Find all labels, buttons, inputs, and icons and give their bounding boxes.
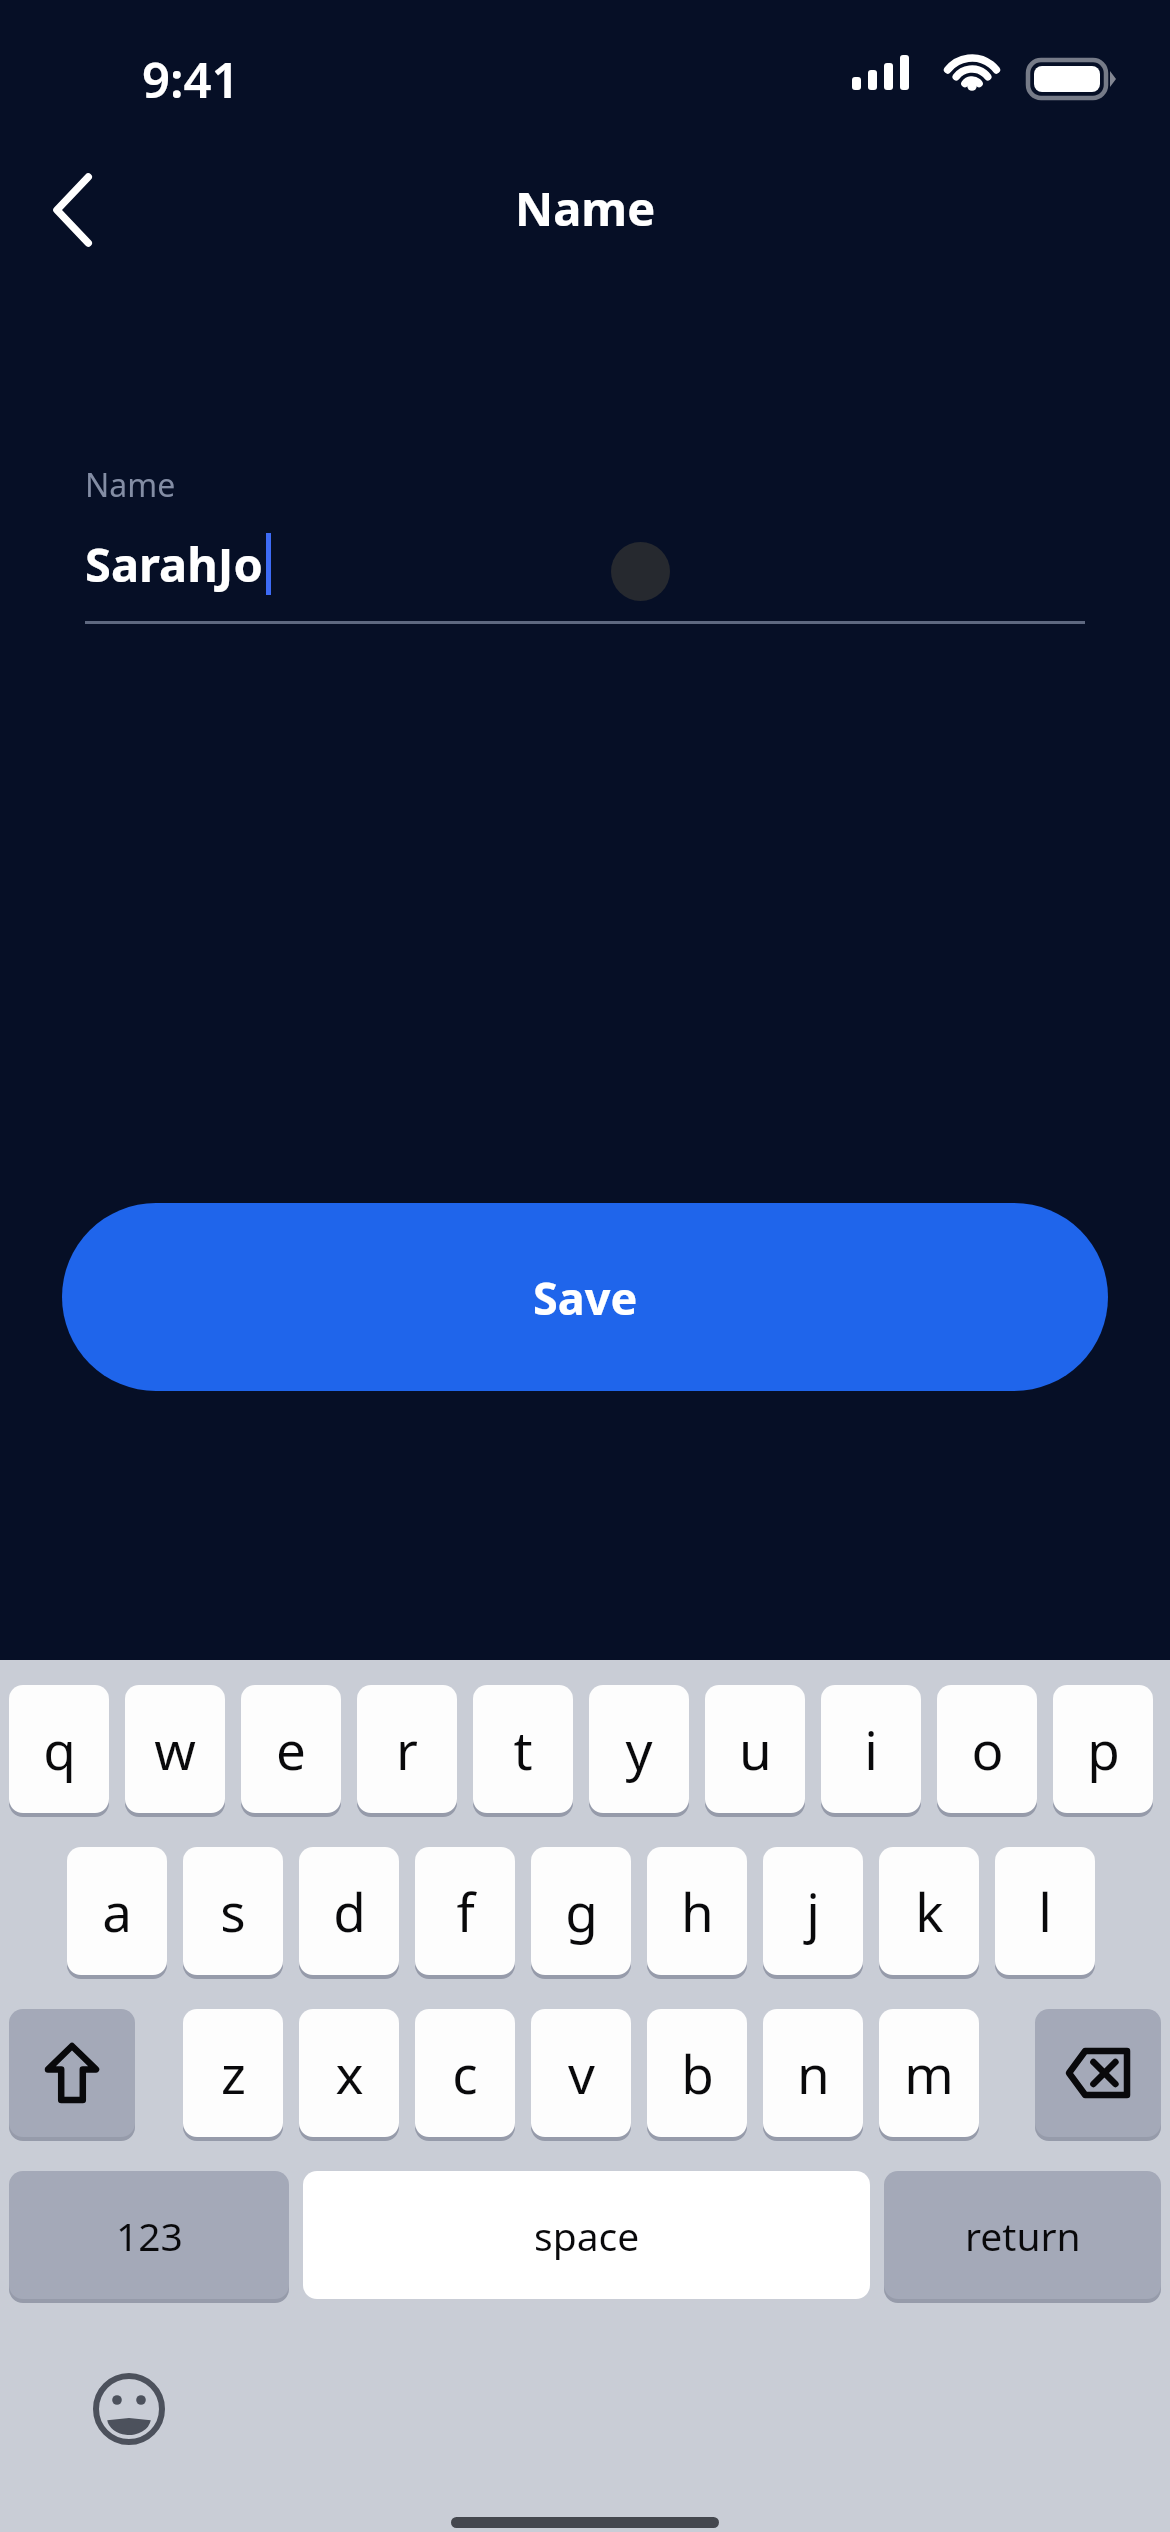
button[interactable]: j bbox=[763, 1847, 863, 1975]
button[interactable]: l bbox=[995, 1847, 1095, 1975]
button[interactable]: SarahJo bbox=[85, 522, 1085, 606]
staticText: l bbox=[1038, 1875, 1052, 1947]
staticText: v bbox=[568, 2037, 595, 2109]
staticText: g bbox=[565, 1875, 598, 1947]
staticText: 123 bbox=[116, 2209, 183, 2262]
staticText: a bbox=[102, 1875, 132, 1947]
button[interactable]: x bbox=[299, 2009, 399, 2137]
button[interactable]: Backspace bbox=[1035, 2009, 1161, 2137]
button[interactable]: d bbox=[299, 1847, 399, 1975]
button[interactable]: Emoji bbox=[88, 2368, 170, 2450]
staticText: b bbox=[681, 2037, 714, 2109]
staticText: t bbox=[513, 1713, 533, 1785]
button[interactable]: Save bbox=[62, 1203, 1108, 1391]
staticText: h bbox=[681, 1875, 714, 1947]
staticText: s bbox=[220, 1875, 246, 1947]
button[interactable]: y bbox=[589, 1685, 689, 1813]
button[interactable]: z bbox=[183, 2009, 283, 2137]
button[interactable]: w bbox=[125, 1685, 225, 1813]
staticText: z bbox=[221, 2037, 246, 2109]
staticText: e bbox=[276, 1713, 306, 1785]
button[interactable]: q bbox=[9, 1685, 109, 1813]
staticText: u bbox=[739, 1713, 772, 1785]
button[interactable]: s bbox=[183, 1847, 283, 1975]
staticText: Save bbox=[533, 1267, 638, 1328]
button[interactable]: f bbox=[415, 1847, 515, 1975]
button[interactable]: Back bbox=[12, 150, 132, 270]
staticText: n bbox=[797, 2037, 830, 2109]
button[interactable]: e bbox=[241, 1685, 341, 1813]
button[interactable]: o bbox=[937, 1685, 1037, 1813]
button[interactable]: g bbox=[531, 1847, 631, 1975]
button[interactable]: Shift bbox=[9, 2009, 135, 2137]
staticText: o bbox=[971, 1713, 1004, 1785]
button[interactable]: r bbox=[357, 1685, 457, 1813]
staticText: return bbox=[965, 2209, 1081, 2262]
staticText: d bbox=[333, 1875, 366, 1947]
button[interactable]: space bbox=[303, 2171, 870, 2299]
staticText: j bbox=[806, 1875, 820, 1947]
button[interactable]: Return bbox=[884, 2171, 1161, 2299]
staticText: f bbox=[456, 1875, 475, 1947]
button[interactable]: c bbox=[415, 2009, 515, 2137]
staticText: y bbox=[625, 1713, 653, 1785]
staticText: w bbox=[154, 1713, 196, 1785]
staticText: x bbox=[335, 2037, 364, 2109]
button[interactable]: n bbox=[763, 2009, 863, 2137]
staticText: m bbox=[904, 2037, 954, 2109]
button[interactable]: p bbox=[1053, 1685, 1153, 1813]
button[interactable]: m bbox=[879, 2009, 979, 2137]
button[interactable]: b bbox=[647, 2009, 747, 2137]
staticText: r bbox=[396, 1713, 418, 1785]
staticText: c bbox=[452, 2037, 478, 2109]
staticText: p bbox=[1087, 1713, 1120, 1785]
button[interactable]: t bbox=[473, 1685, 573, 1813]
staticText: Name bbox=[515, 176, 656, 240]
button[interactable]: u bbox=[705, 1685, 805, 1813]
staticText: k bbox=[915, 1875, 944, 1947]
button[interactable]: Numbers bbox=[9, 2171, 289, 2299]
button[interactable]: Clear text bbox=[611, 542, 670, 601]
staticText: Name bbox=[85, 463, 176, 507]
button[interactable]: v bbox=[531, 2009, 631, 2137]
button[interactable]: i bbox=[821, 1685, 921, 1813]
staticText: SarahJo bbox=[85, 532, 263, 596]
staticText: q bbox=[43, 1713, 76, 1785]
button[interactable]: h bbox=[647, 1847, 747, 1975]
staticText: i bbox=[864, 1713, 878, 1785]
staticText: space bbox=[534, 2209, 640, 2262]
button[interactable]: k bbox=[879, 1847, 979, 1975]
staticText: 9:41 bbox=[142, 46, 240, 113]
button[interactable]: a bbox=[67, 1847, 167, 1975]
